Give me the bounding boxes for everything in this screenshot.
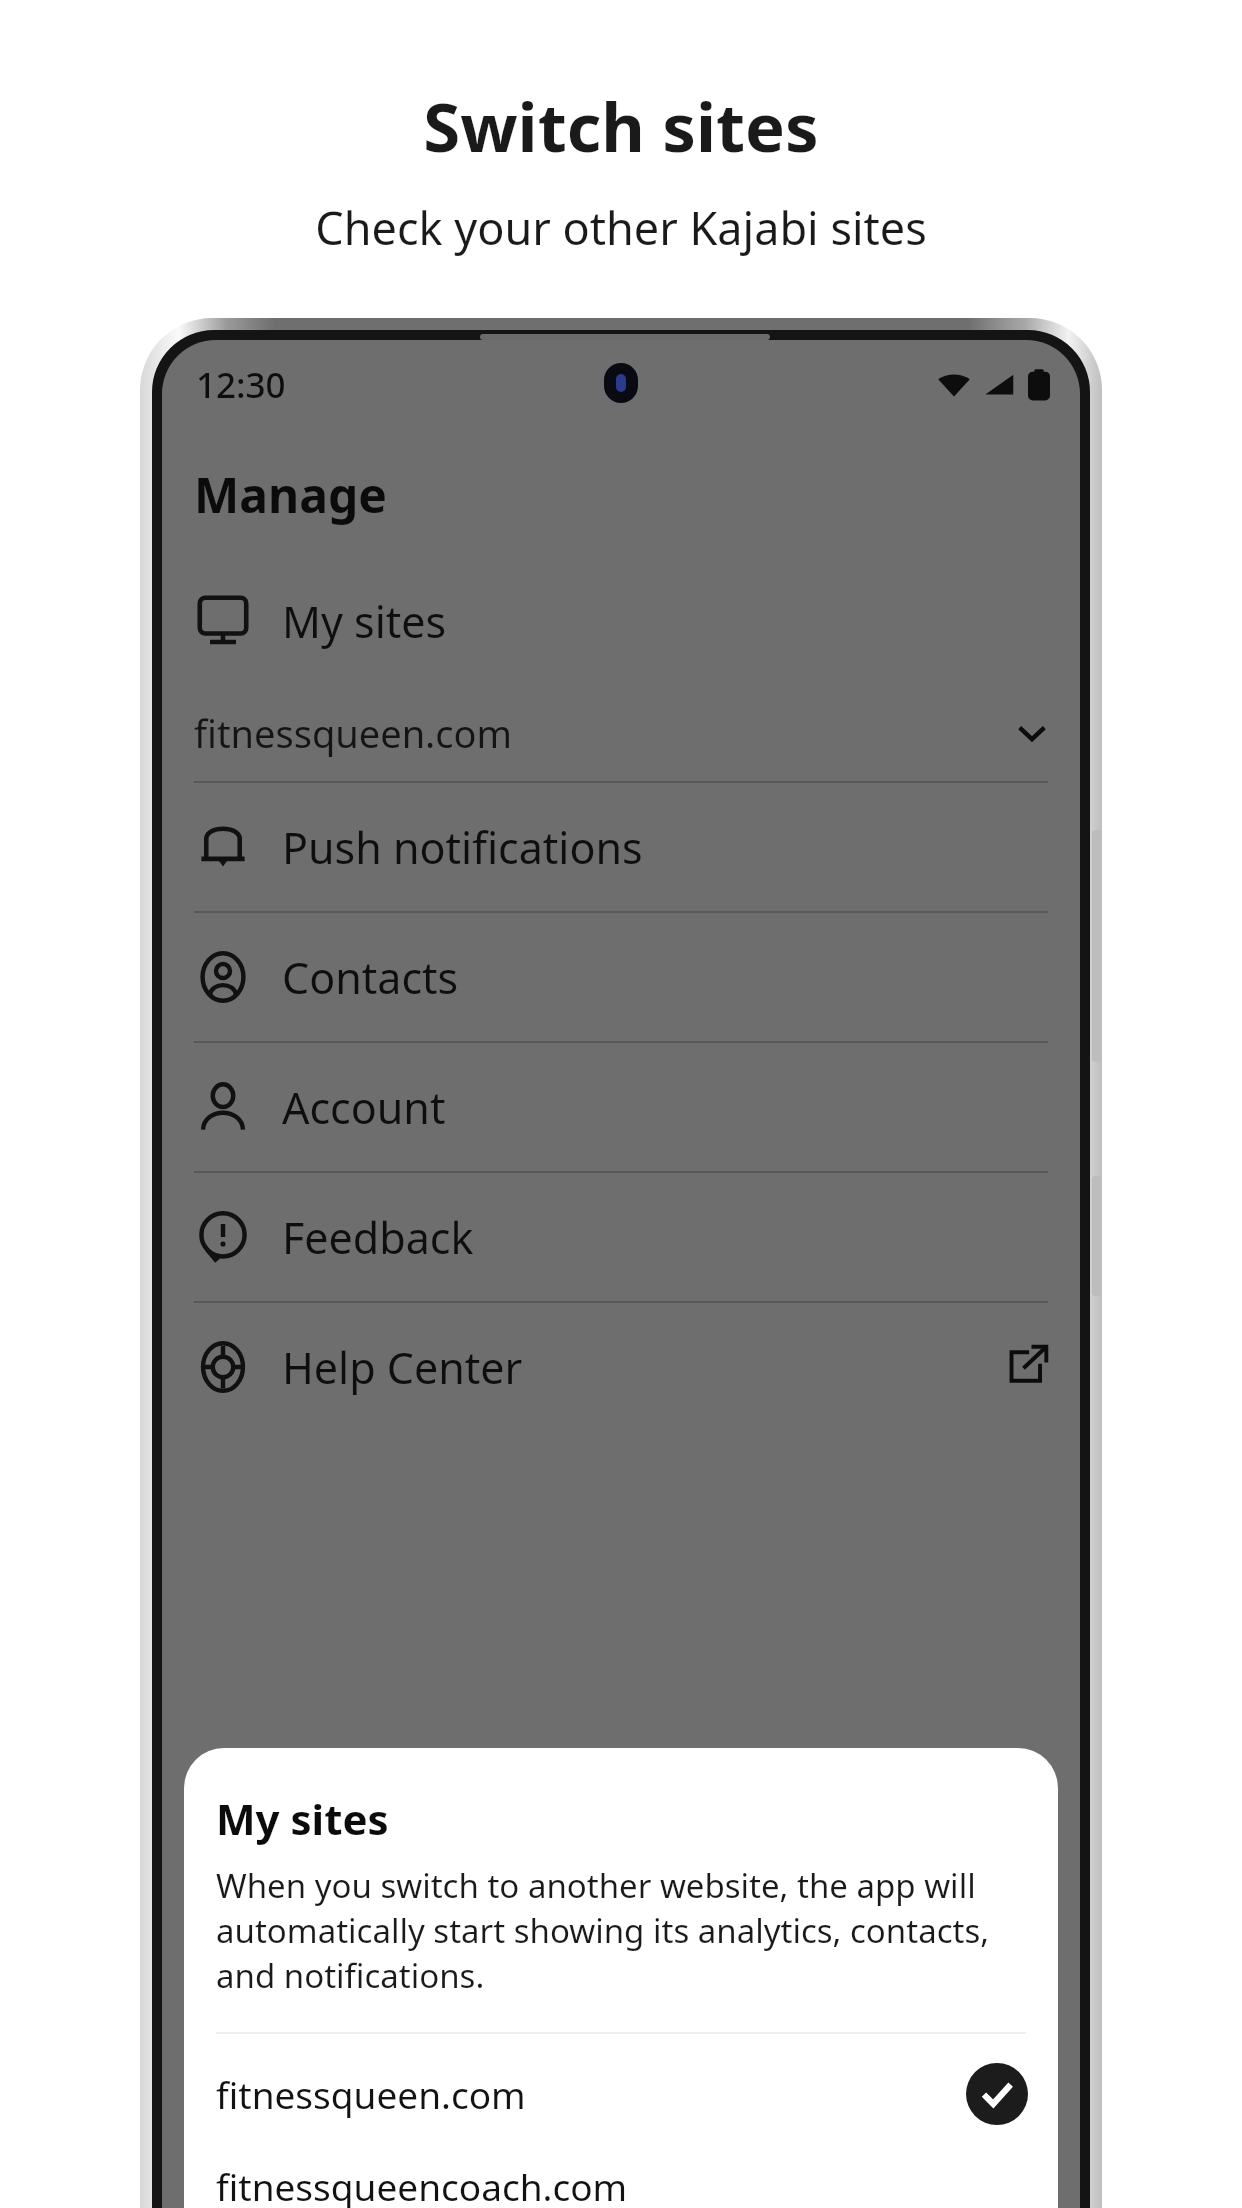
staticText: My sites bbox=[282, 592, 447, 651]
staticText: Account bbox=[282, 1078, 446, 1137]
button[interactable]: fitnessqueen.com bbox=[162, 685, 1080, 781]
staticText: Contacts bbox=[282, 948, 459, 1007]
button[interactable]: My sites bbox=[162, 557, 1080, 685]
button[interactable]: Feedback bbox=[162, 1173, 1080, 1301]
staticText: Feedback bbox=[282, 1208, 474, 1267]
staticText: Manage bbox=[194, 462, 387, 527]
staticText: fitnessqueen.com bbox=[194, 707, 513, 759]
button[interactable]: Help Center bbox=[162, 1303, 1080, 1431]
staticText: fitnessqueencoach.com bbox=[216, 2161, 628, 2208]
staticText: 12:30 bbox=[196, 361, 286, 409]
staticText: When you switch to another website, the … bbox=[216, 1863, 998, 1998]
staticText: Switch sites bbox=[423, 80, 819, 171]
staticText: My sites bbox=[216, 1790, 389, 1847]
staticText: Check your other Kajabi sites bbox=[315, 197, 927, 258]
button[interactable]: Contacts bbox=[162, 913, 1080, 1041]
staticText: fitnessqueen.com bbox=[216, 2069, 526, 2119]
staticText: Push notifications bbox=[282, 818, 643, 877]
button[interactable]: fitnessqueencoach.com bbox=[184, 2154, 1058, 2208]
staticText: Help Center bbox=[282, 1338, 523, 1397]
button[interactable]: Push notifications bbox=[162, 783, 1080, 911]
button[interactable]: fitnessqueen.com bbox=[184, 2034, 1058, 2154]
button[interactable]: Account bbox=[162, 1043, 1080, 1171]
